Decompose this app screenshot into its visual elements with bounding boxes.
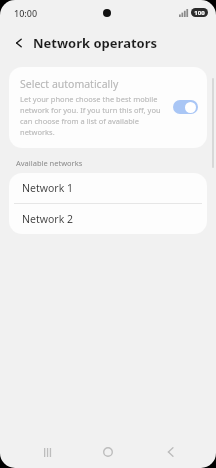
- button[interactable]: Back: [155, 437, 185, 467]
- button[interactable]: Back: [8, 32, 30, 54]
- button[interactable]: Select automatically toggle: [173, 100, 198, 114]
- staticText: Available networks: [16, 158, 83, 168]
- button[interactable]: Select automatically: [9, 67, 207, 148]
- button[interactable]: Network 2: [9, 204, 207, 234]
- staticText: Let your phone choose the best mobile ne…: [20, 94, 167, 137]
- button[interactable]: Home: [93, 437, 123, 467]
- staticText: Select automatically: [20, 77, 119, 91]
- staticText: Network 2: [22, 212, 73, 226]
- button[interactable]: Network 1: [9, 173, 207, 203]
- staticText: 10:00: [14, 7, 38, 19]
- staticText: 100: [194, 9, 205, 17]
- button[interactable]: Recent apps: [32, 437, 62, 467]
- staticText: Network operators: [33, 34, 158, 52]
- staticText: Network 1: [22, 181, 73, 195]
